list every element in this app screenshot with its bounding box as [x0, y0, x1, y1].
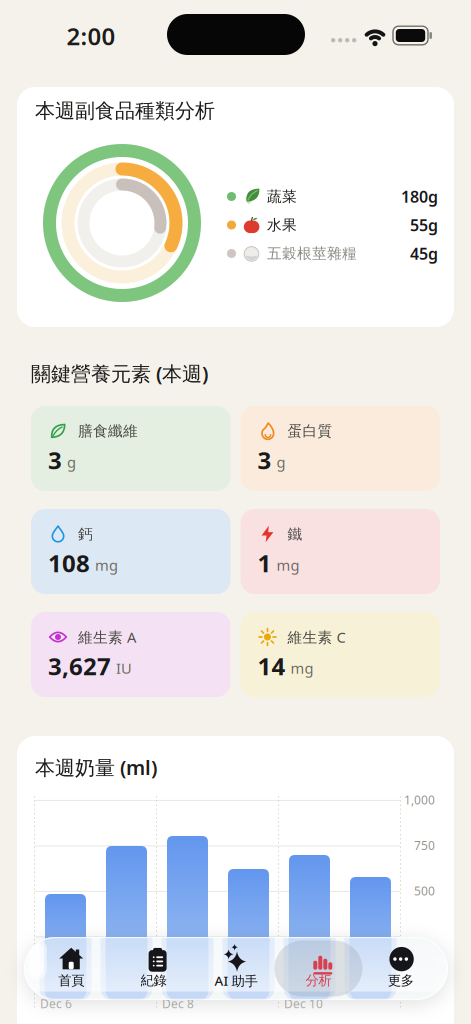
staticText: 55g [410, 214, 438, 236]
staticText: 五穀根莖雜糧 [267, 244, 357, 262]
staticText: 750 [414, 837, 435, 853]
staticText: IU [116, 658, 132, 678]
staticText: g [67, 452, 76, 472]
staticText: 2:00 [66, 20, 115, 52]
button[interactable]: 首頁 [30, 937, 112, 1000]
button[interactable]: 紀錄 [112, 937, 195, 1000]
staticText: 180g [401, 186, 438, 207]
button[interactable]: AI 助手 [195, 937, 277, 1000]
staticText: mg [95, 555, 118, 575]
staticText: 蛋白質 [287, 422, 332, 440]
staticText: Dec 10 [284, 995, 323, 1011]
staticText: 3 [257, 444, 271, 476]
staticText: 3 [48, 444, 62, 476]
staticText: 本週副食品種類分析 [35, 98, 215, 123]
staticText: 更多 [388, 972, 414, 989]
staticText: 紀錄 [141, 972, 167, 989]
staticText: 維生素 A [78, 627, 136, 647]
staticText: mg [290, 658, 313, 678]
button[interactable]: 更多 [360, 937, 442, 1000]
staticText: 關鍵營養元素 (本週) [31, 360, 208, 387]
staticText: 水果 [267, 216, 297, 234]
staticText: 3,627 [48, 650, 111, 682]
staticText: 首頁 [58, 972, 84, 989]
staticText: 本週奶量 (ml) [35, 754, 157, 781]
staticText: 45g [410, 243, 438, 264]
staticText: 膳食纖維 [78, 422, 138, 440]
staticText: 14 [257, 650, 285, 682]
staticText: 鈣 [78, 525, 93, 543]
staticText: 維生素 C [287, 627, 345, 647]
staticText: Dec 6 [40, 995, 72, 1011]
staticText: 蔬菜 [267, 187, 297, 205]
staticText: mg [276, 555, 299, 575]
staticText: 1 [257, 547, 271, 579]
staticText: 108 [48, 547, 90, 579]
staticText: 鐵 [287, 525, 302, 543]
staticText: g [276, 452, 285, 472]
staticText: 1,000 [404, 792, 435, 808]
staticText: 分析 [305, 972, 331, 989]
staticText: 500 [414, 883, 435, 899]
button[interactable]: 分析 [277, 937, 360, 1000]
staticText: AI 助手 [214, 972, 257, 989]
staticText: Dec 8 [162, 995, 194, 1011]
